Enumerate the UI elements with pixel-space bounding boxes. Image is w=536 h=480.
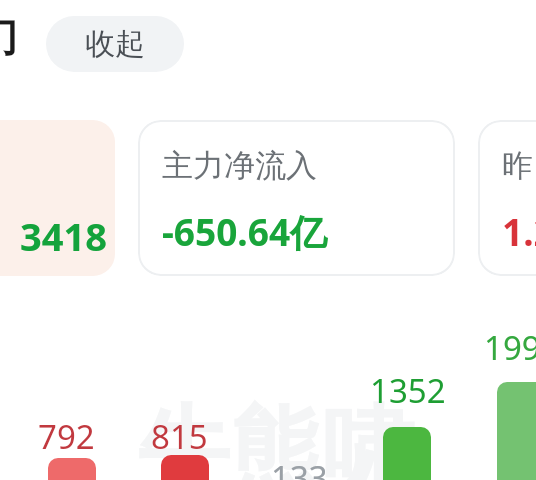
staticText: 昨日 — [502, 146, 536, 185]
staticText: 收起 — [85, 25, 145, 63]
staticText: 815 — [151, 414, 208, 459]
staticText: 3418 — [20, 210, 107, 262]
staticText: 133 — [271, 455, 328, 480]
button[interactable]: 昨日 — [478, 120, 536, 276]
staticText: 牛熊啸宇 — [96, 392, 456, 480]
staticText: 主力净流入 — [162, 146, 317, 185]
staticText: 1996 — [484, 325, 536, 370]
staticText: 1352 — [370, 368, 446, 413]
staticText: 792 — [38, 414, 95, 459]
staticText: -650.64亿 — [162, 206, 328, 257]
button[interactable]: 收起 — [46, 16, 184, 72]
staticText: 1.2亿 — [502, 206, 536, 257]
staticText: 刀 — [0, 12, 18, 62]
button[interactable]: 3418 — [0, 120, 115, 276]
button[interactable]: 主力净流入 — [138, 120, 455, 276]
